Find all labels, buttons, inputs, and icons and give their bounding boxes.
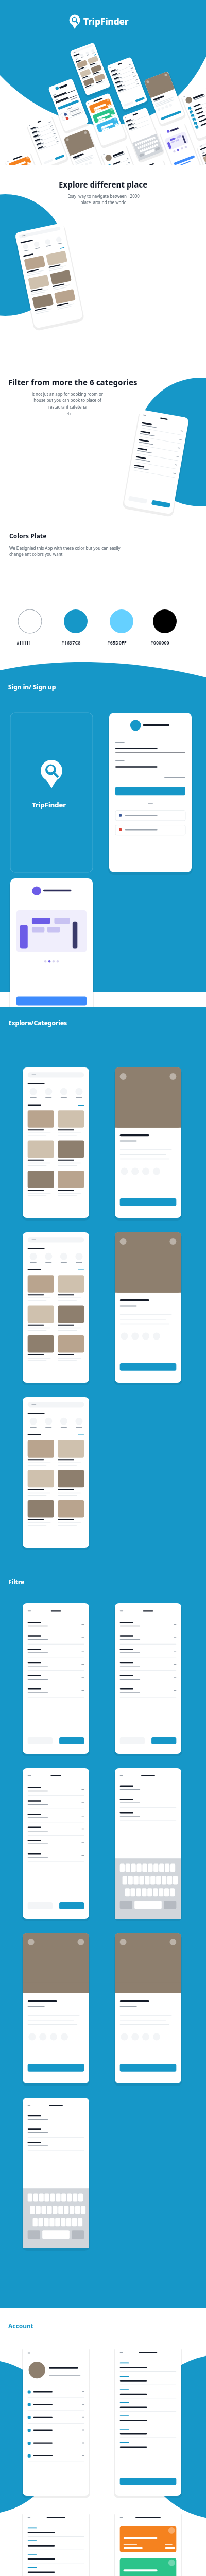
button[interactable]: Filtre bbox=[8, 1578, 25, 1586]
staticText: Filter from more the 6 categories bbox=[8, 377, 138, 387]
staticText: Colors Plate bbox=[9, 532, 47, 540]
staticText: Esay way to navigate between +2000 place… bbox=[67, 193, 140, 206]
staticText: #1697C8 bbox=[61, 639, 81, 646]
staticText: Explore different place bbox=[59, 179, 148, 190]
staticText: Sign in/ Sign up bbox=[8, 683, 56, 691]
staticText: #ffffff bbox=[16, 639, 30, 646]
staticText: TripFinder bbox=[32, 800, 66, 809]
button[interactable]: Explore/Categories bbox=[8, 1019, 67, 1027]
button[interactable]: Account bbox=[8, 2321, 33, 2330]
staticText: #000000 bbox=[150, 639, 169, 646]
staticText: We Designied this App with these color b… bbox=[9, 545, 121, 557]
staticText: it not jut an app for booking room or ho… bbox=[8, 391, 127, 417]
staticText: #65D0FF bbox=[107, 639, 127, 646]
button[interactable]: TripFinder bbox=[69, 13, 137, 29]
staticText: TripFinder bbox=[83, 15, 129, 27]
